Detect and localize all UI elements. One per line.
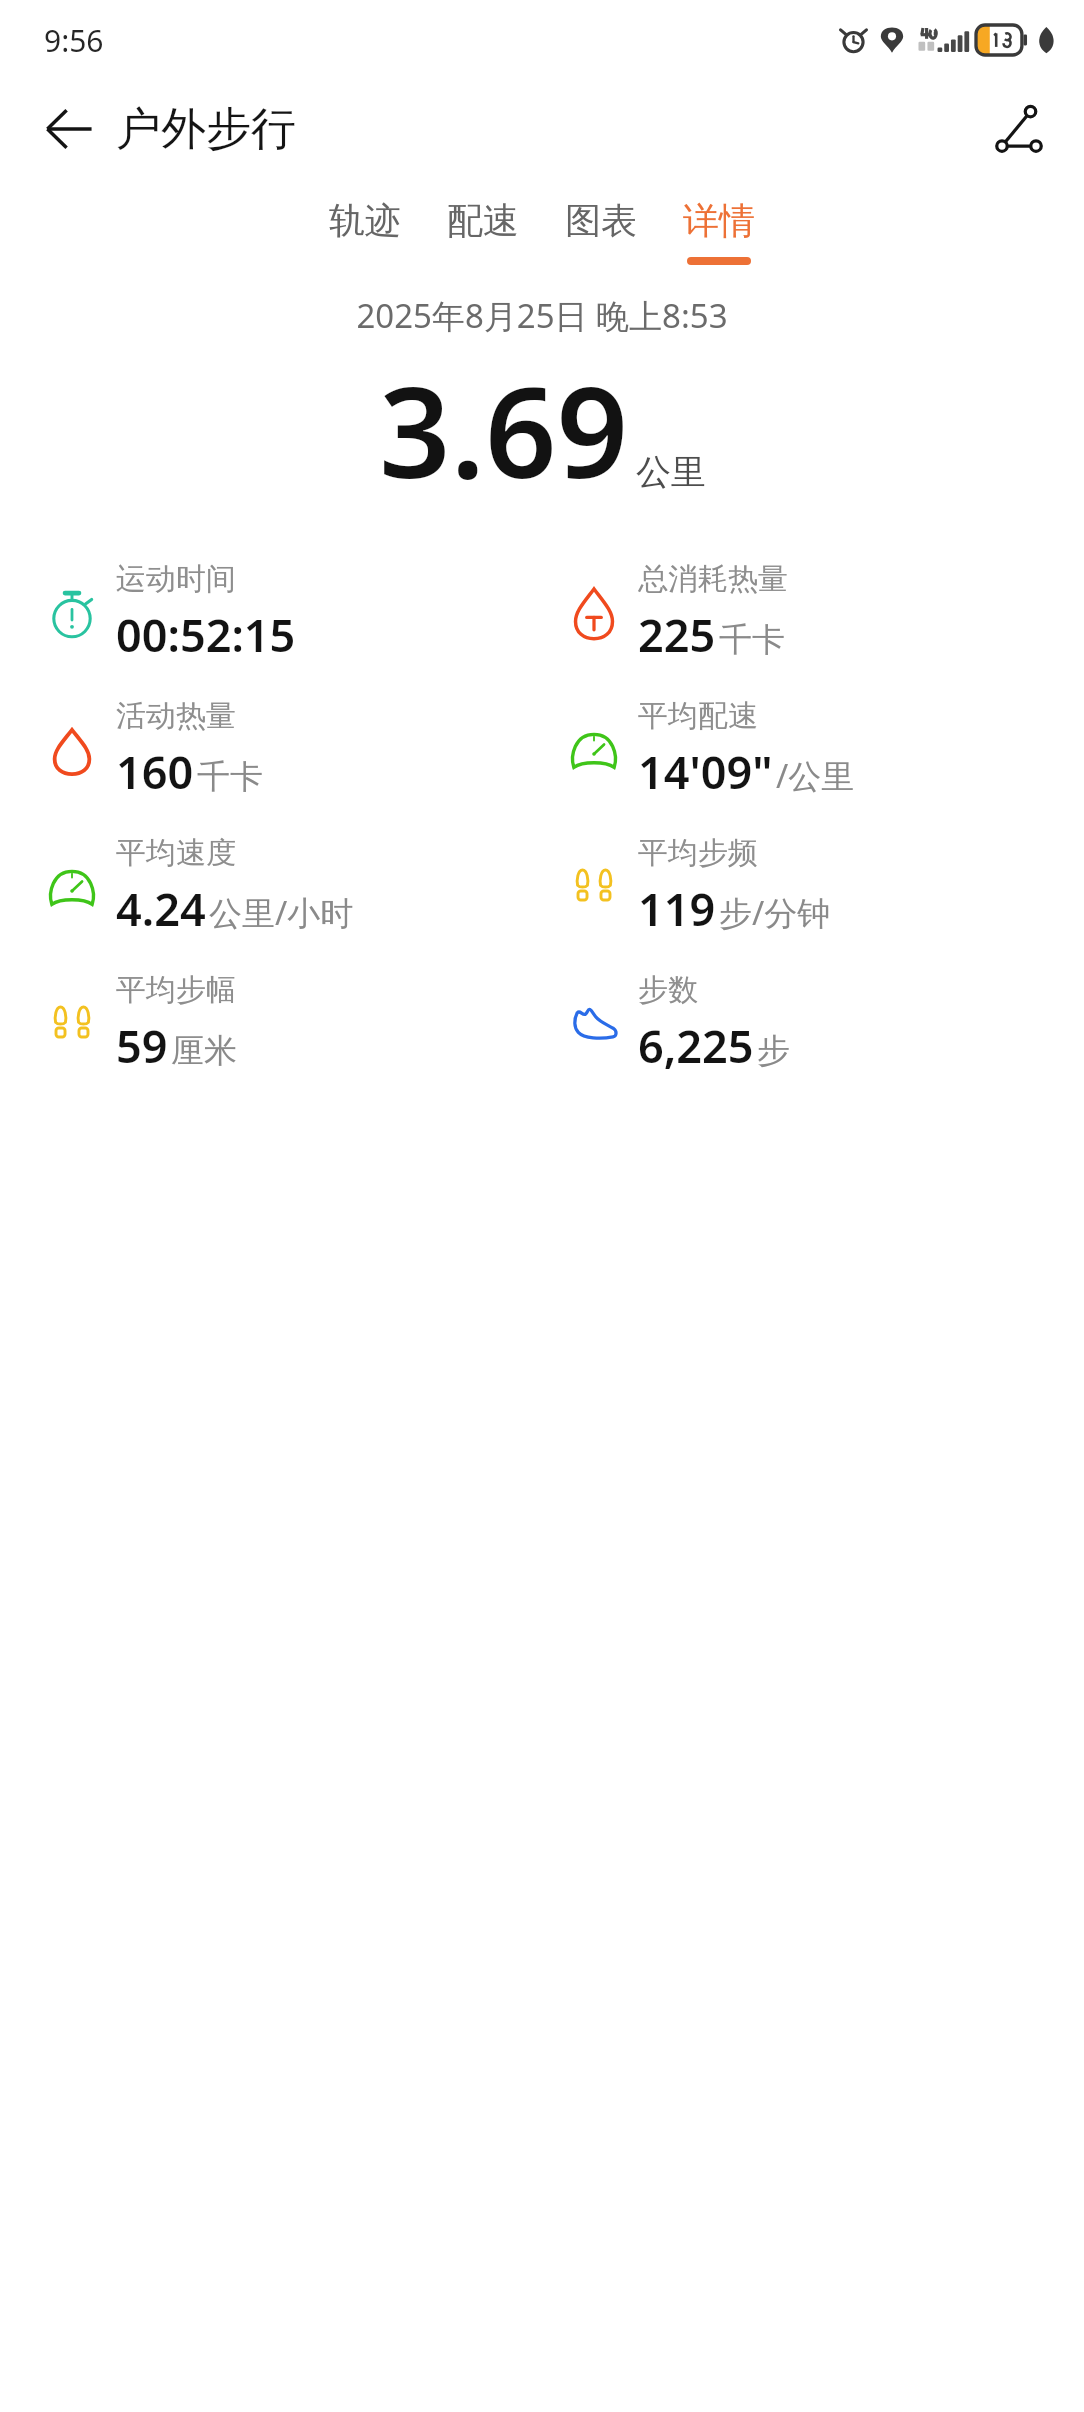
staticText: 6,225 <box>638 1015 754 1076</box>
button[interactable]: Back <box>26 86 112 172</box>
button[interactable]: 图表 <box>542 196 660 267</box>
staticText: 千卡 <box>197 756 263 798</box>
button[interactable]: Share <box>976 86 1062 172</box>
staticText: 平均速度 <box>116 834 236 872</box>
button[interactable]: 总消耗热量 <box>542 544 1084 681</box>
staticText: 00:52:15 <box>116 604 296 665</box>
staticText: 公里/小时 <box>209 890 354 935</box>
button[interactable]: 配速 <box>424 196 542 267</box>
staticText: 步/分钟 <box>719 890 831 935</box>
button[interactable]: 平均配速 <box>542 681 1084 818</box>
staticText: 总消耗热量 <box>638 560 788 598</box>
staticText: 59 <box>116 1015 168 1076</box>
staticText: 4.24 <box>116 878 206 939</box>
button[interactable]: 运动时间 <box>0 544 542 681</box>
staticText: 图表 <box>565 198 637 243</box>
staticText: 轨迹 <box>329 198 401 243</box>
staticText: 9:56 <box>44 20 104 61</box>
staticText: 户外步行 <box>116 101 296 158</box>
staticText: 平均步幅 <box>116 971 236 1009</box>
staticText: 160 <box>116 741 194 802</box>
button[interactable]: 轨迹 <box>306 196 424 267</box>
button[interactable]: 平均速度 <box>0 818 542 955</box>
staticText: 步数 <box>638 971 698 1009</box>
staticText: 步 <box>757 1030 790 1072</box>
button[interactable]: 平均步幅 <box>0 955 542 1092</box>
staticText: 2025年8月25日 晚上8:53 <box>0 293 1084 338</box>
button[interactable]: 步数 <box>542 955 1084 1092</box>
staticText: 运动时间 <box>116 560 236 598</box>
staticText: 平均配速 <box>638 697 758 735</box>
staticText: 千卡 <box>719 619 785 661</box>
button[interactable]: 平均步频 <box>542 818 1084 955</box>
staticText: 公里 <box>636 450 706 494</box>
staticText: 14'09" <box>638 741 773 802</box>
staticText: 厘米 <box>171 1030 237 1072</box>
button[interactable]: 详情 <box>660 196 778 267</box>
staticText: 119 <box>638 878 716 939</box>
staticText: 平均步频 <box>638 834 758 872</box>
staticText: 活动热量 <box>116 697 236 735</box>
staticText: /公里 <box>776 753 855 798</box>
button[interactable]: 活动热量 <box>0 681 542 818</box>
staticText: 配速 <box>447 198 519 243</box>
staticText: 225 <box>638 604 716 665</box>
staticText: 详情 <box>683 198 755 243</box>
staticText: 3.69 <box>379 344 628 514</box>
